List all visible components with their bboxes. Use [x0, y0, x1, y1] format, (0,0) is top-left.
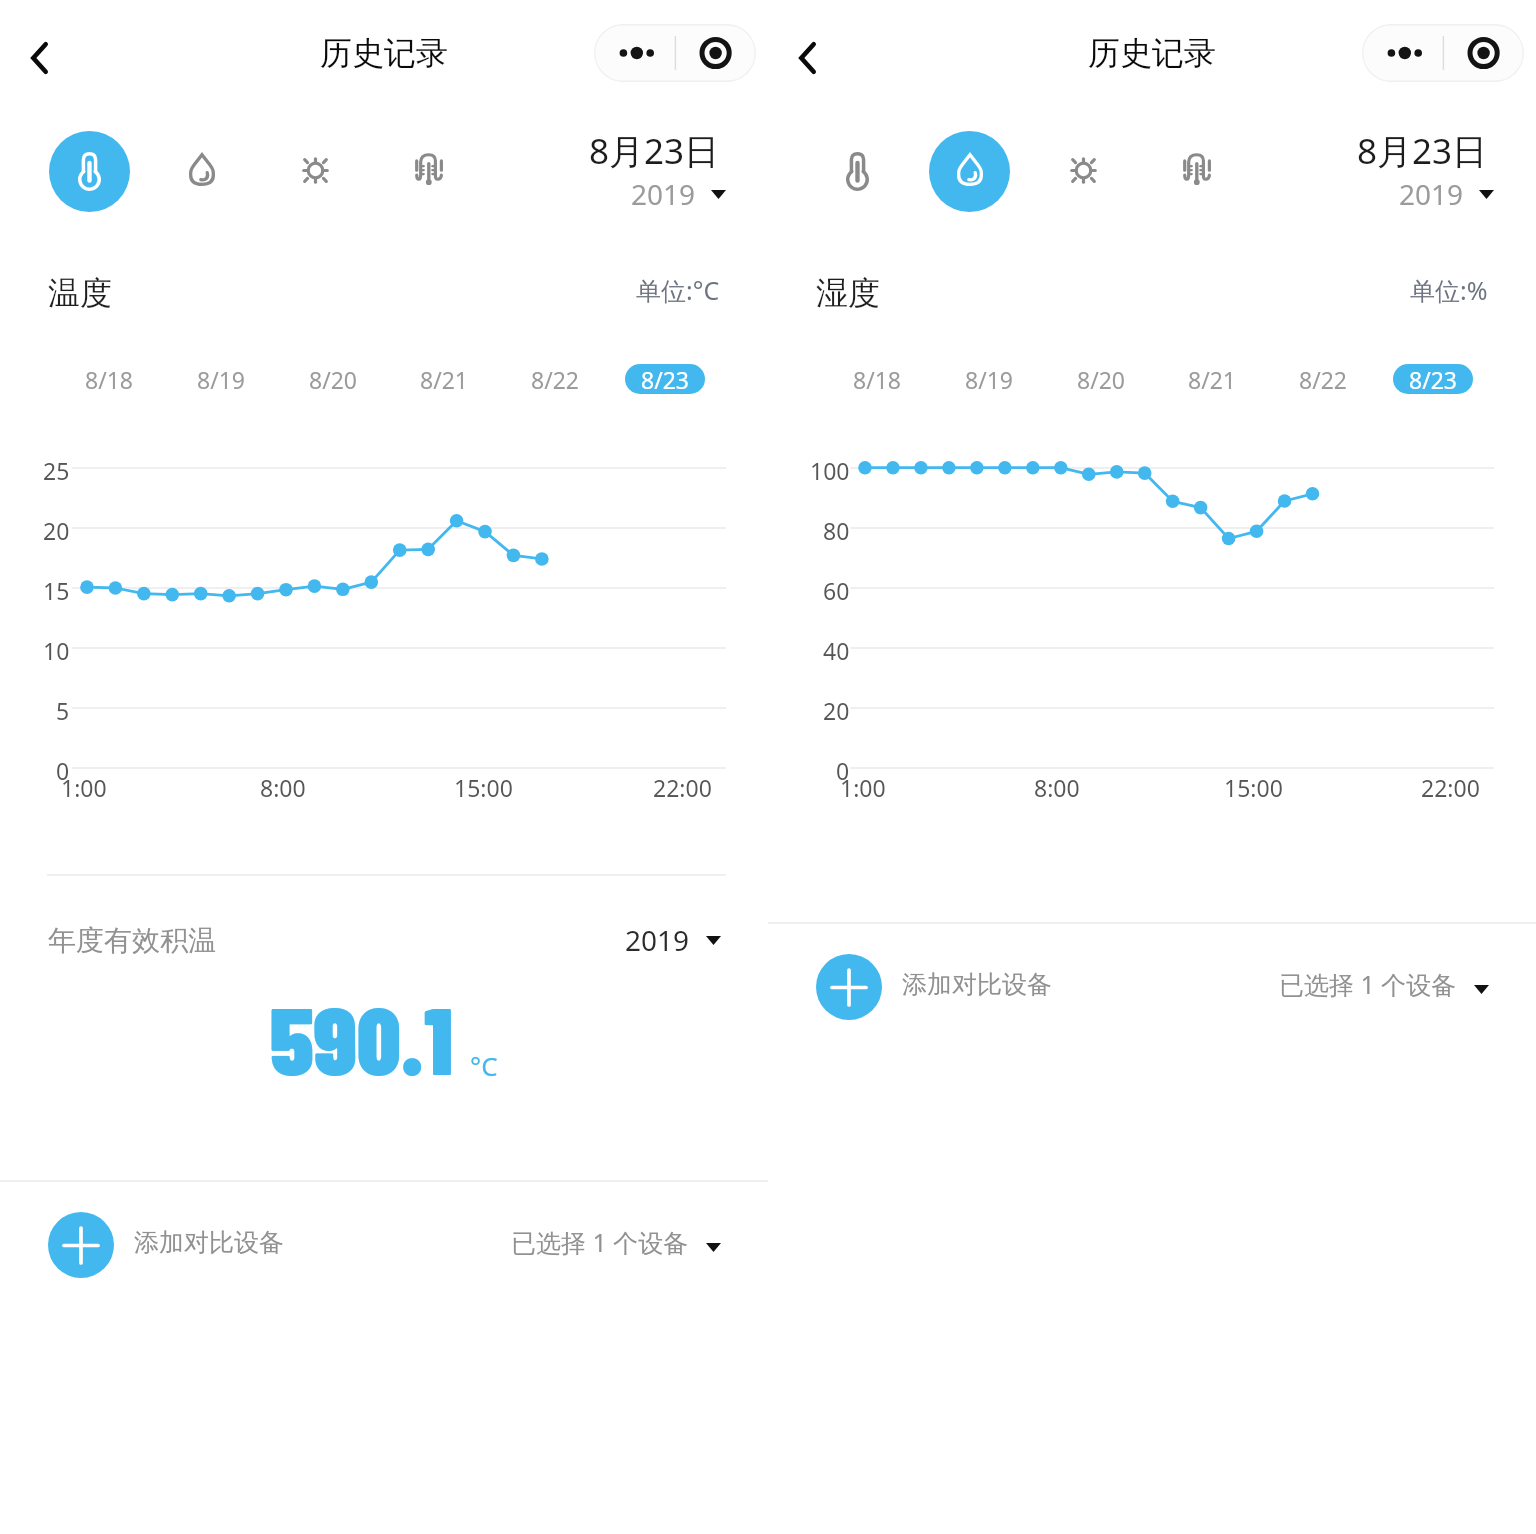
staticText: 8:00: [260, 772, 306, 803]
staticText: 8/19: [965, 364, 1014, 394]
button[interactable]: Humidity: [161, 131, 242, 212]
button[interactable]: 8/21: [404, 364, 484, 394]
button[interactable]: 8月23日: [540, 127, 720, 207]
staticText: 0: [56, 755, 70, 786]
staticText: 单位:%: [1410, 273, 1488, 307]
button[interactable]: Soil moisture: [388, 131, 469, 212]
staticText: 60: [823, 575, 850, 606]
staticText: 8/19: [197, 364, 246, 394]
button[interactable]: Back: [777, 28, 837, 88]
staticText: 单位:°C: [636, 273, 720, 307]
staticText: 25: [43, 455, 70, 486]
button[interactable]: 添加对比设备: [0, 1212, 768, 1278]
staticText: 8/22: [1299, 364, 1348, 394]
staticText: 历史记录: [1088, 33, 1216, 73]
staticText: 2019: [631, 175, 696, 213]
staticText: 1:00: [61, 772, 107, 803]
staticText: 8/22: [531, 364, 580, 394]
button[interactable]: 8/18: [69, 364, 149, 394]
button[interactable]: 8/20: [293, 364, 373, 394]
staticText: 5: [56, 695, 70, 726]
staticText: 8/20: [309, 364, 358, 394]
staticText: 0: [836, 755, 850, 786]
staticText: 15:00: [1224, 772, 1283, 803]
staticText: 10: [43, 635, 70, 666]
button[interactable]: Soil moisture: [1156, 131, 1237, 212]
staticText: 年度有效积温: [48, 923, 216, 958]
staticText: 2019: [625, 921, 690, 959]
button[interactable]: 8/22: [515, 364, 595, 394]
button[interactable]: 8/19: [181, 364, 261, 394]
staticText: 1:00: [840, 772, 886, 803]
staticText: 湿度: [816, 273, 880, 313]
button[interactable]: Light: [1043, 131, 1124, 212]
button[interactable]: 8/19: [949, 364, 1029, 394]
staticText: 添加对比设备: [902, 969, 1052, 1000]
staticText: 8/18: [85, 364, 134, 394]
button[interactable]: More: [1362, 24, 1524, 82]
button[interactable]: More: [594, 24, 756, 82]
button[interactable]: Light: [275, 131, 356, 212]
staticText: 80: [823, 515, 850, 546]
staticText: 22:00: [653, 772, 712, 803]
staticText: 8/20: [1077, 364, 1126, 394]
staticText: 添加对比设备: [134, 1227, 284, 1258]
button[interactable]: 添加对比设备: [768, 954, 1536, 1020]
staticText: 20: [43, 515, 70, 546]
staticText: 8/23: [641, 364, 690, 394]
button[interactable]: 8/18: [837, 364, 917, 394]
staticText: 8/18: [853, 364, 902, 394]
button[interactable]: Temperature: [49, 131, 130, 212]
staticText: 已选择 1 个设备: [511, 1225, 689, 1259]
button[interactable]: 8月23日: [1308, 127, 1488, 207]
button[interactable]: 年度有效积温: [0, 912, 768, 968]
staticText: 20: [823, 695, 850, 726]
button[interactable]: 8/22: [1283, 364, 1363, 394]
button[interactable]: Back: [9, 28, 69, 88]
staticText: 8月23日: [1357, 127, 1488, 175]
button[interactable]: 8/20: [1061, 364, 1141, 394]
button[interactable]: Humidity: [929, 131, 1010, 212]
staticText: 8/21: [1188, 364, 1237, 394]
staticText: 已选择 1 个设备: [1279, 967, 1457, 1001]
staticText: 15: [43, 575, 70, 606]
staticText: 8月23日: [589, 127, 720, 175]
staticText: 8/23: [1409, 364, 1458, 394]
staticText: 15:00: [454, 772, 513, 803]
staticText: 100: [810, 455, 850, 486]
staticText: 590.1: [270, 980, 453, 1094]
staticText: 8:00: [1034, 772, 1080, 803]
staticText: 温度: [48, 273, 112, 313]
staticText: 22:00: [1421, 772, 1480, 803]
button[interactable]: Temperature: [817, 131, 898, 212]
staticText: 2019: [1399, 175, 1464, 213]
button[interactable]: 8/23: [625, 364, 705, 394]
staticText: 40: [823, 635, 850, 666]
staticText: 8/21: [420, 364, 469, 394]
button[interactable]: 8/21: [1172, 364, 1252, 394]
button[interactable]: 8/23: [1393, 364, 1473, 394]
staticText: °C: [470, 1048, 498, 1083]
staticText: 历史记录: [320, 33, 448, 73]
